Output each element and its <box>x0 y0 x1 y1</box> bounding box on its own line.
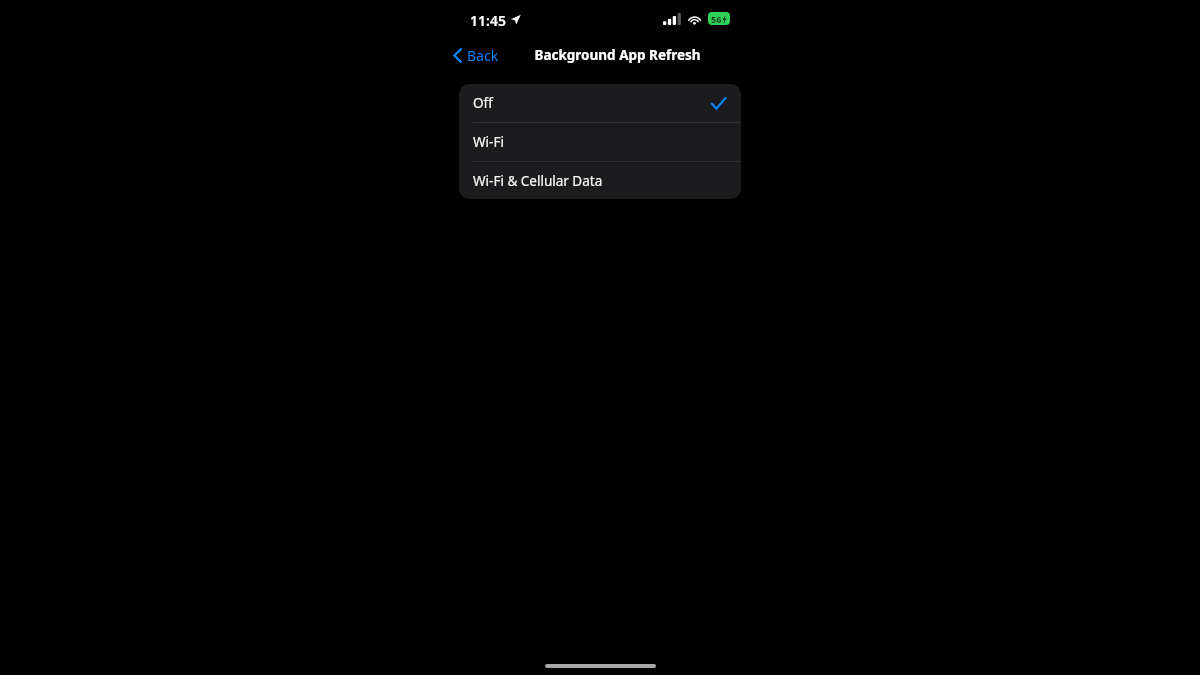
button[interactable]: Off <box>459 84 741 123</box>
button[interactable]: Wi-Fi <box>459 123 741 162</box>
staticText: Background App Refresh <box>534 46 701 64</box>
staticText: Back <box>467 46 499 65</box>
button[interactable]: Wi-Fi & Cellular Data <box>459 162 741 199</box>
button[interactable]: Back <box>445 42 507 69</box>
other: Selected <box>711 97 726 110</box>
staticText: 56 <box>711 13 722 25</box>
staticText: Wi-Fi <box>473 133 504 151</box>
staticText: Wi-Fi & Cellular Data <box>473 172 603 190</box>
staticText: Off <box>473 94 493 112</box>
staticText: 11:45 <box>470 11 506 30</box>
